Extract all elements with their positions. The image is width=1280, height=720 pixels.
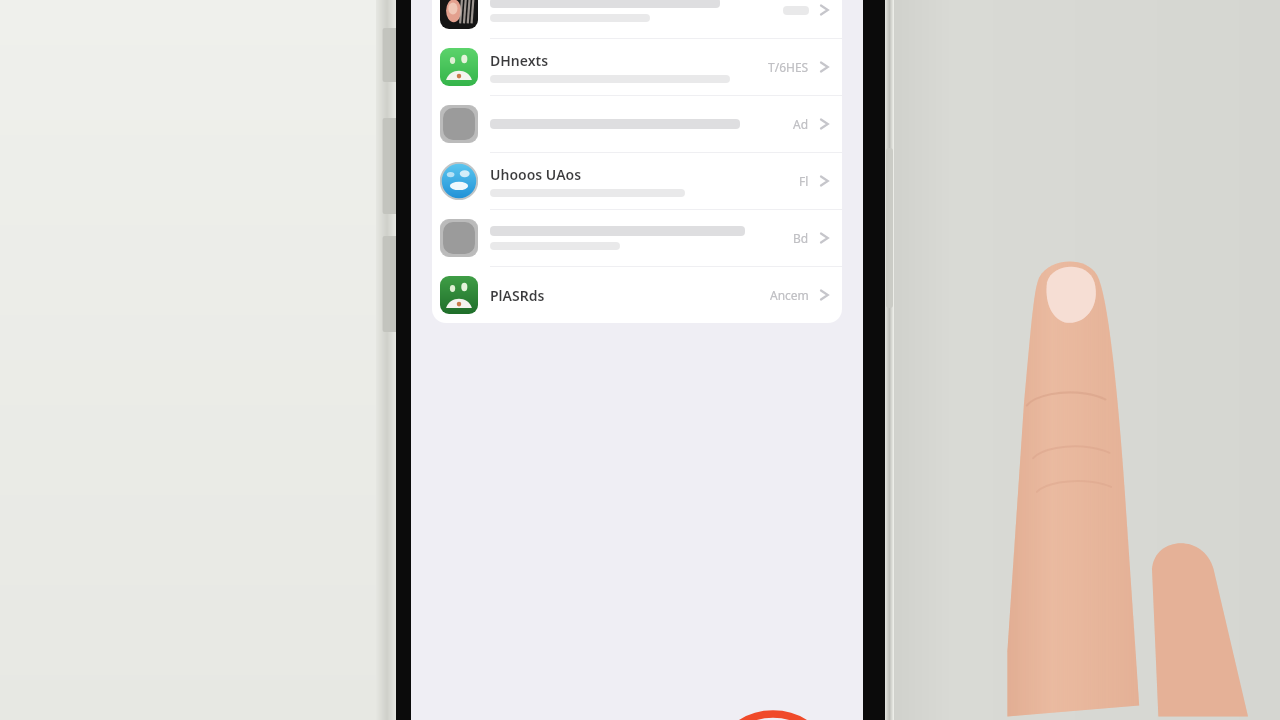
button[interactable]: PlASRds [432, 267, 842, 323]
other: Open [819, 2, 830, 18]
button[interactable]: DHnexts [432, 39, 842, 95]
other: Open [819, 173, 830, 189]
other: Open [819, 287, 830, 303]
staticText: Bd [793, 230, 809, 246]
staticText: PlASRds [490, 286, 545, 305]
button[interactable]: Ad [432, 96, 842, 152]
staticText: Ad [793, 116, 809, 132]
other: Open [819, 59, 830, 75]
staticText: T/6HES [768, 59, 809, 75]
button[interactable]: Bd [432, 210, 842, 266]
other: Open [819, 116, 830, 132]
other: Open [819, 230, 830, 246]
staticText: Ancem [770, 287, 809, 303]
staticText: DHnexts [490, 51, 549, 70]
staticText: Fl [799, 173, 809, 189]
staticText: Uhooos UAos [490, 165, 582, 184]
button[interactable]: Open [432, 0, 842, 38]
button[interactable]: Uhooos UAos [432, 153, 842, 209]
